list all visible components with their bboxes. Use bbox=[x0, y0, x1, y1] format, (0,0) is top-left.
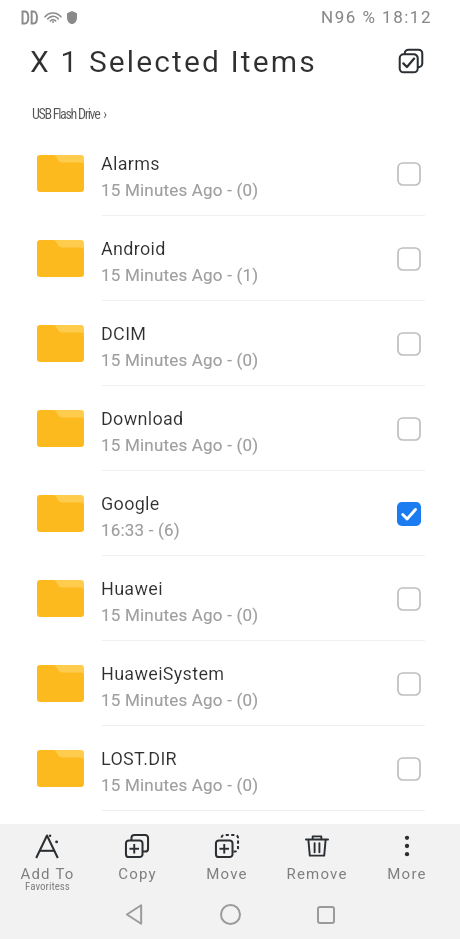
button[interactable]: Not selected bbox=[387, 577, 431, 621]
button[interactable]: HuaweiSystem bbox=[0, 641, 460, 726]
button[interactable]: DCIM bbox=[0, 301, 460, 386]
staticText: 16:33 - (6) bbox=[101, 520, 180, 540]
button[interactable]: USB Flash Drive bbox=[32, 106, 108, 122]
staticText: Android bbox=[101, 238, 166, 259]
staticText: HuaweiSystem bbox=[101, 663, 225, 684]
staticText: Add To bbox=[20, 865, 75, 883]
staticText: 15 Minutes Ago - (0) bbox=[101, 180, 259, 200]
button[interactable]: Select all bbox=[394, 44, 428, 78]
button[interactable]: Copy bbox=[92, 824, 182, 914]
staticText: Favoritess bbox=[25, 880, 70, 893]
button[interactable]: Alarms bbox=[0, 131, 460, 216]
button[interactable]: Remove bbox=[272, 824, 362, 914]
button[interactable]: Not selected bbox=[387, 322, 431, 366]
staticText: Download bbox=[101, 408, 184, 429]
staticText: More bbox=[387, 865, 427, 883]
staticText: 15 Minutes Ago - (0) bbox=[101, 435, 259, 455]
button[interactable]: LOST.DIR bbox=[0, 726, 460, 811]
button[interactable]: Not selected bbox=[387, 662, 431, 706]
staticText: DCIM bbox=[101, 323, 147, 344]
button[interactable]: Back bbox=[86, 890, 182, 939]
button[interactable]: Huawei bbox=[0, 556, 460, 641]
button[interactable]: Not selected bbox=[387, 407, 431, 451]
staticText: N96 % 18:12 bbox=[321, 7, 432, 27]
button[interactable]: Android bbox=[0, 216, 460, 301]
staticText: LOST.DIR bbox=[101, 748, 177, 769]
staticText: Copy bbox=[118, 865, 157, 883]
staticText: › bbox=[100, 106, 108, 122]
staticText: 15 Minutes Ago - (0) bbox=[101, 690, 259, 710]
button[interactable]: Move bbox=[182, 824, 272, 914]
staticText: Google bbox=[101, 493, 160, 514]
staticText: 15 Minutes Ago - (1) bbox=[101, 265, 259, 285]
staticText: USB Flash Drive bbox=[32, 106, 100, 122]
button[interactable]: Not selected bbox=[387, 152, 431, 196]
button[interactable]: Download bbox=[0, 386, 460, 471]
button[interactable]: Recents bbox=[278, 890, 374, 939]
button[interactable]: Add To bbox=[2, 824, 92, 914]
staticText: Alarms bbox=[101, 153, 160, 174]
staticText: X 1 Selected Items bbox=[30, 44, 317, 79]
button[interactable]: Home bbox=[182, 890, 278, 939]
button[interactable]: Google bbox=[0, 471, 460, 556]
button[interactable]: Not selected bbox=[387, 747, 431, 791]
staticText: Move bbox=[206, 865, 248, 883]
button[interactable]: More bbox=[362, 824, 452, 914]
button[interactable]: Selected bbox=[387, 492, 431, 536]
staticText: Huawei bbox=[101, 578, 163, 599]
staticText: 15 Minutes Ago - (0) bbox=[101, 350, 259, 370]
staticText: 15 Minutes Ago - (0) bbox=[101, 775, 259, 795]
button[interactable]: Not selected bbox=[387, 237, 431, 281]
staticText: 15 Minutes Ago - (0) bbox=[101, 605, 259, 625]
staticText: Remove bbox=[286, 865, 348, 883]
